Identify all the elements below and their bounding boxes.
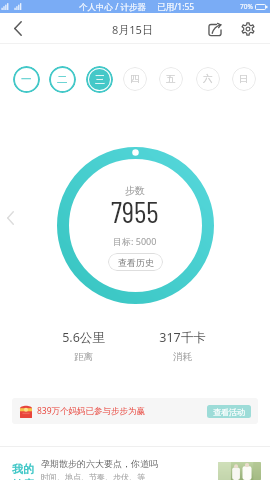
staticText: 距离 xyxy=(74,351,93,363)
button[interactable]: 四 xyxy=(123,67,147,91)
staticText: 个人中心 / 计步器 已用/1:55 xyxy=(79,1,195,13)
staticText: 查看活动 xyxy=(213,407,245,417)
button[interactable]: 839万个妈妈已参与步步为赢 xyxy=(12,398,258,424)
staticText: 8月15日 xyxy=(112,22,153,37)
staticText: 839万个妈妈已参与步步为赢 xyxy=(37,405,146,417)
staticText: 一 xyxy=(21,73,32,86)
staticText: 我的 xyxy=(12,462,34,476)
staticText: 四 xyxy=(130,73,140,85)
staticText: 二 xyxy=(57,73,68,86)
staticText: 五 xyxy=(166,73,176,85)
button[interactable]: 查看历史 xyxy=(108,253,163,271)
button[interactable]: Back xyxy=(0,13,36,44)
staticText: 孕期散步的六大要点，你道吗 xyxy=(41,458,158,469)
staticText: 7955 xyxy=(111,193,159,229)
button[interactable]: 三 xyxy=(86,66,113,93)
staticText: 日 xyxy=(239,73,249,85)
staticText: 三 xyxy=(95,73,105,86)
staticText: 查看历史 xyxy=(118,257,154,268)
button[interactable]: 一 xyxy=(13,66,40,93)
button[interactable]: Settings xyxy=(234,13,262,44)
button[interactable]: 查看活动 xyxy=(207,405,251,418)
button[interactable]: 317千卡 xyxy=(152,329,212,363)
button[interactable]: 5.6公里 xyxy=(53,329,113,363)
staticText: 步数 xyxy=(125,184,145,197)
button[interactable]: 五 xyxy=(159,67,183,91)
staticText: 六 xyxy=(203,73,213,85)
button[interactable]: 六 xyxy=(196,67,220,91)
staticText: 时间、地点、节奏、步伏、等 xyxy=(41,472,145,480)
button[interactable]: 我的 xyxy=(0,446,270,480)
staticText: 目标: 5000 xyxy=(113,235,157,247)
staticText: 健康 xyxy=(12,477,34,480)
button[interactable]: 日 xyxy=(232,67,256,91)
staticText: 消耗 xyxy=(173,351,192,363)
button[interactable]: 二 xyxy=(49,66,76,93)
button[interactable]: Share xyxy=(201,13,229,44)
staticText: 5.6公里 xyxy=(62,329,105,346)
staticText: 70% xyxy=(240,2,253,11)
staticText: 317千卡 xyxy=(159,329,206,346)
